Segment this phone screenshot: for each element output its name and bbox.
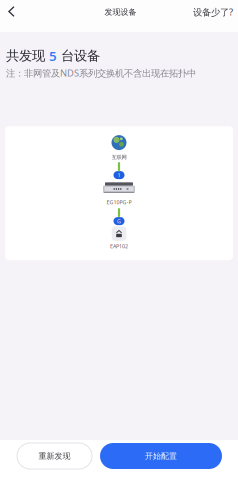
staticText: 1 (117, 172, 120, 179)
button[interactable]: 重新发现 (17, 443, 92, 469)
staticText: 共发现 (6, 48, 49, 64)
staticText: 5 (49, 47, 57, 65)
staticText: EG10PG-P (106, 199, 131, 206)
button[interactable]: 发现设备 (104, 2, 136, 22)
staticText: 互联网 (111, 154, 126, 160)
button[interactable]: Back (0, 0, 24, 23)
staticText: 发现设备 (104, 7, 136, 17)
staticText: 注：非网管及NDS系列交换机不含出现在拓扑中 (6, 67, 196, 79)
staticText: 重新发现 (38, 451, 70, 461)
staticText: EAP102 (110, 243, 128, 250)
staticText: 设备少了? (193, 6, 233, 18)
staticText: G (117, 218, 121, 225)
button[interactable]: 设备少了? (193, 2, 233, 22)
button[interactable]: 开始配置 (100, 443, 222, 469)
staticText: 开始配置 (145, 451, 177, 461)
staticText: 台设备 (57, 48, 100, 64)
